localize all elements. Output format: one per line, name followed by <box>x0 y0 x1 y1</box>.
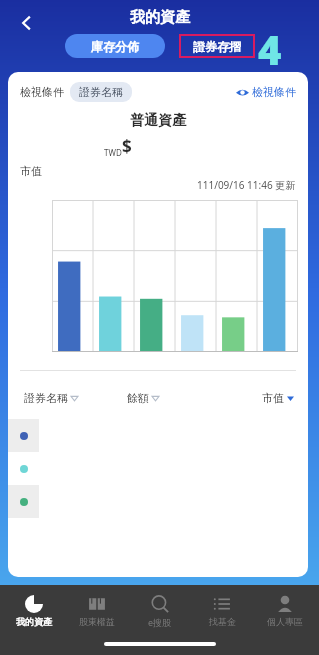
other: View conditions <box>236 86 249 99</box>
staticText: 證券存摺 <box>193 39 241 54</box>
staticText: 證券名稱 <box>79 85 123 99</box>
button[interactable] <box>8 452 308 485</box>
staticText: 4 <box>258 22 282 76</box>
button[interactable]: 股東權益 <box>68 593 126 629</box>
button[interactable]: 個人專區 <box>256 593 314 629</box>
button[interactable]: 市值 <box>217 391 294 405</box>
staticText: 111/09/16 11:46 更新 <box>197 178 296 192</box>
staticText: 餘額 <box>127 391 149 405</box>
staticText: 市值 <box>20 164 42 178</box>
staticText: 證券名稱 <box>24 391 68 405</box>
button[interactable]: 餘額 <box>127 391 217 405</box>
button[interactable]: 證券名稱 <box>24 391 127 405</box>
staticText: 個人專區 <box>267 616 303 627</box>
button[interactable] <box>8 419 308 452</box>
button[interactable]: 庫存分佈 <box>65 34 165 58</box>
staticText: TWD <box>104 147 122 158</box>
staticText: 我的資產 <box>130 8 190 27</box>
staticText: 市值 <box>262 391 284 405</box>
staticText: $ <box>122 135 132 158</box>
button[interactable]: 證券存摺 <box>179 34 255 58</box>
staticText: 股東權益 <box>79 616 115 627</box>
button[interactable]: 證券名稱 <box>70 82 132 102</box>
staticText: 找基金 <box>209 616 236 627</box>
staticText: 檢視條件 <box>20 85 64 99</box>
staticText: 我的資產 <box>16 616 52 627</box>
staticText: 庫存分佈 <box>91 39 139 54</box>
staticText: e搜股 <box>148 616 172 628</box>
staticText: 普通資產 <box>130 112 186 130</box>
button[interactable]: e搜股 <box>131 593 189 630</box>
button[interactable] <box>8 485 308 518</box>
button[interactable]: 找基金 <box>193 593 251 629</box>
button[interactable]: View conditions <box>234 83 298 101</box>
staticText: 檢視條件 <box>252 85 296 99</box>
button[interactable]: 我的資產 <box>5 593 63 629</box>
button[interactable]: Back <box>10 6 44 40</box>
